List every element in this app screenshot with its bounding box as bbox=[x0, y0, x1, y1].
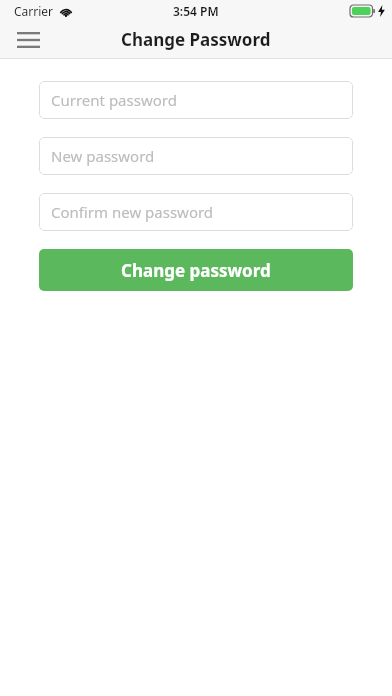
button[interactable]: Change password bbox=[39, 249, 353, 291]
button[interactable]: New password bbox=[39, 137, 353, 175]
button[interactable]: Confirm new password bbox=[39, 193, 353, 231]
staticText: New password bbox=[51, 146, 155, 166]
button[interactable]: Open navigation menu bbox=[8, 23, 48, 57]
staticText: Change password bbox=[121, 259, 271, 282]
button[interactable]: Current password bbox=[39, 81, 353, 119]
staticText: 3:54 PM bbox=[173, 3, 219, 19]
staticText: Current password bbox=[51, 90, 177, 110]
staticText: Confirm new password bbox=[51, 202, 214, 222]
staticText: Change Password bbox=[121, 28, 271, 51]
staticText: Carrier bbox=[14, 3, 54, 19]
